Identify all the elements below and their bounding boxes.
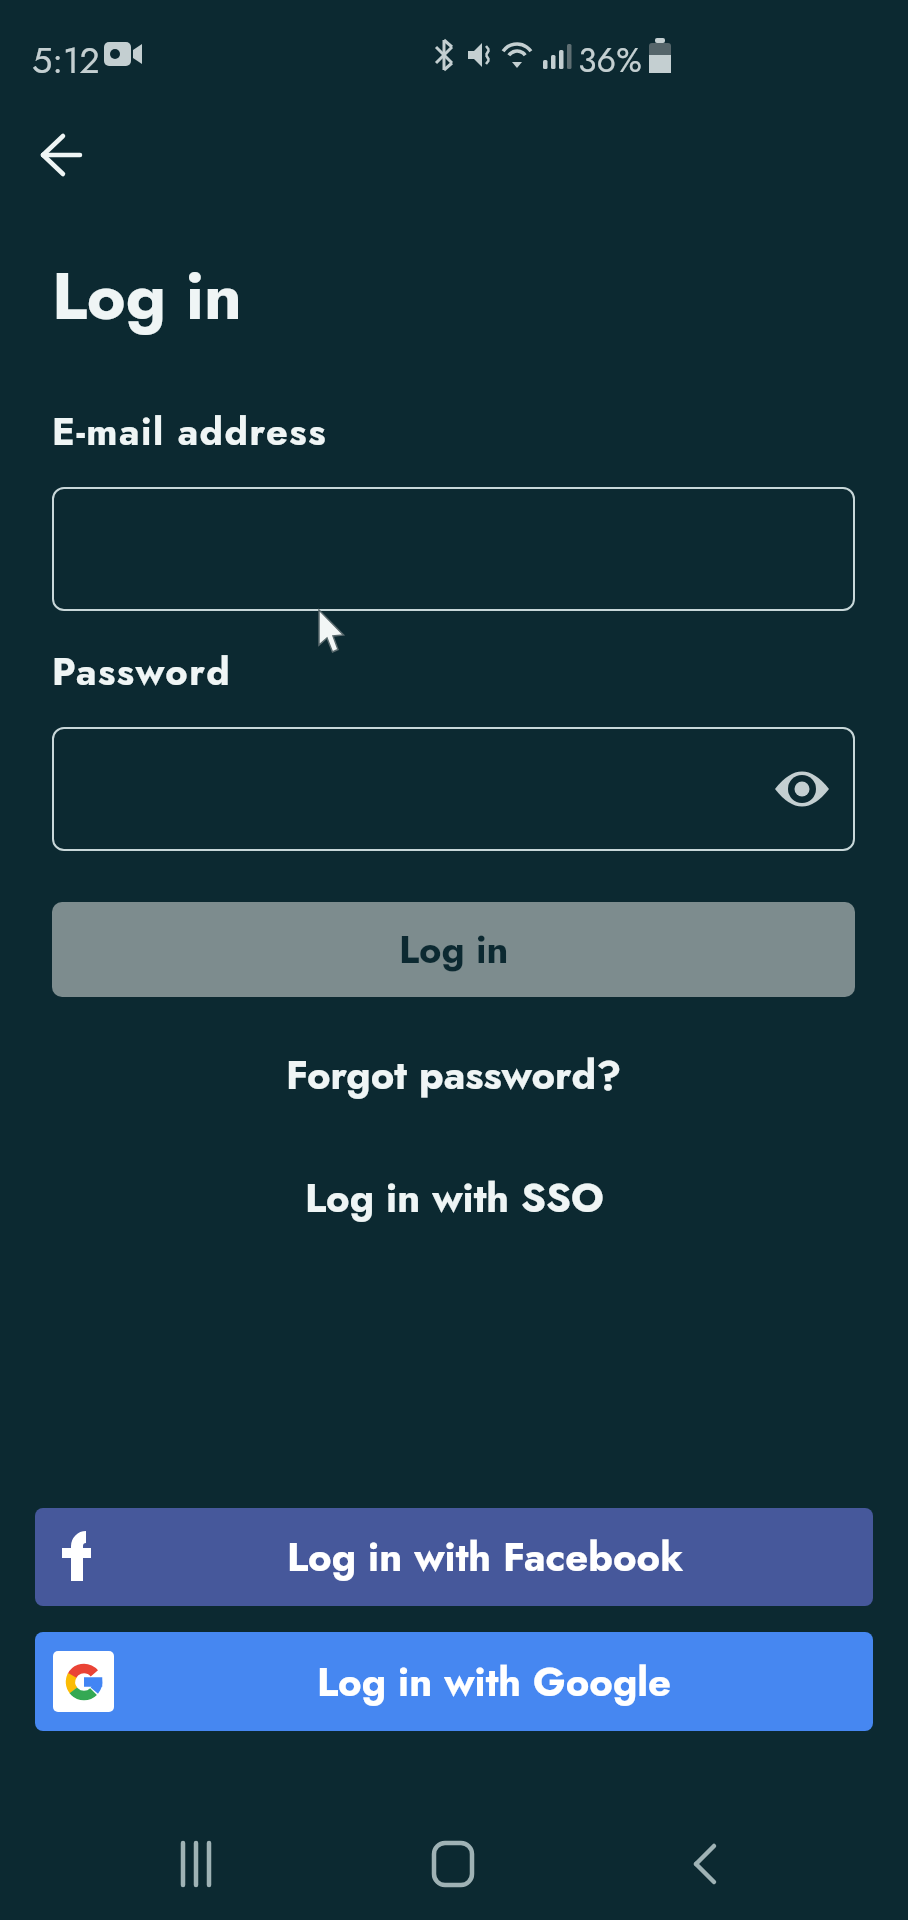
staticText: Forgot password? xyxy=(286,1046,622,1104)
button[interactable] xyxy=(150,1815,246,1911)
staticText: Log in xyxy=(399,922,509,977)
staticText: Log in xyxy=(52,248,243,343)
button[interactable] xyxy=(28,121,96,189)
button[interactable]: Log in with Google xyxy=(35,1632,873,1731)
staticText: Log in with Google xyxy=(317,1653,671,1711)
button[interactable] xyxy=(52,727,855,851)
button[interactable]: Log in with SSO xyxy=(305,1169,604,1227)
button[interactable] xyxy=(775,768,829,810)
button[interactable] xyxy=(406,1815,502,1911)
staticText: Log in with SSO xyxy=(305,1169,604,1227)
staticText: Log in with Facebook xyxy=(287,1528,684,1586)
button[interactable] xyxy=(52,487,855,611)
staticText: E-mail address xyxy=(52,404,327,459)
button[interactable] xyxy=(660,1815,756,1911)
button[interactable]: Forgot password? xyxy=(286,1046,622,1104)
button[interactable]: Log in xyxy=(52,902,855,997)
button[interactable]: Log in with Facebook xyxy=(35,1508,873,1606)
staticText: 5:12 xyxy=(32,34,100,86)
staticText: 36% xyxy=(578,36,642,85)
staticText: Password xyxy=(52,644,232,699)
